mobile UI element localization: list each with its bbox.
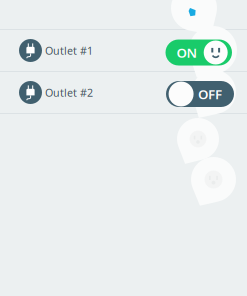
staticText: Outlet #2 bbox=[45, 85, 93, 100]
staticText: Outlet #1 bbox=[45, 43, 93, 58]
button[interactable]: OFF bbox=[166, 81, 234, 107]
staticText: OFF bbox=[198, 85, 222, 103]
button[interactable]: Outlet #2 bbox=[0, 72, 247, 113]
button[interactable]: ON bbox=[165, 39, 232, 65]
button[interactable]: Outlet #1 bbox=[0, 30, 247, 71]
staticText: ON bbox=[176, 44, 197, 61]
